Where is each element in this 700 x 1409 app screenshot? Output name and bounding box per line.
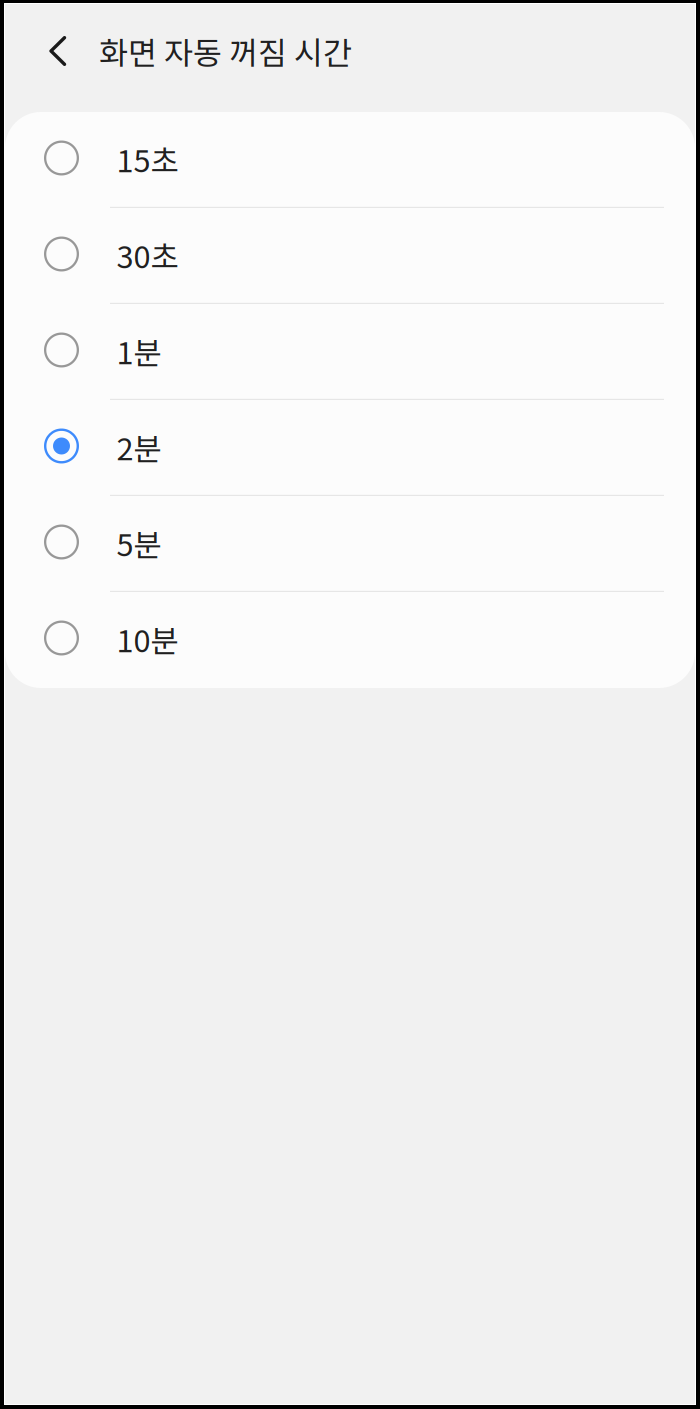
button[interactable]: 5분 [5, 496, 695, 592]
staticText: 5분 [116, 521, 161, 565]
staticText: 30초 [116, 233, 178, 277]
button[interactable]: 1분 [5, 304, 695, 400]
staticText: 1분 [116, 329, 161, 373]
button[interactable]: 10분 [5, 592, 695, 688]
button[interactable]: 30초 [5, 208, 695, 304]
staticText: 15초 [116, 137, 178, 181]
staticText: 10분 [116, 617, 178, 661]
button[interactable]: Back [34, 4, 82, 112]
staticText: 화면 자동 꺼짐 시간 [99, 28, 352, 74]
staticText: 2분 [116, 425, 161, 469]
button[interactable]: 15초 [5, 112, 695, 208]
button[interactable]: 2분 [5, 400, 695, 496]
